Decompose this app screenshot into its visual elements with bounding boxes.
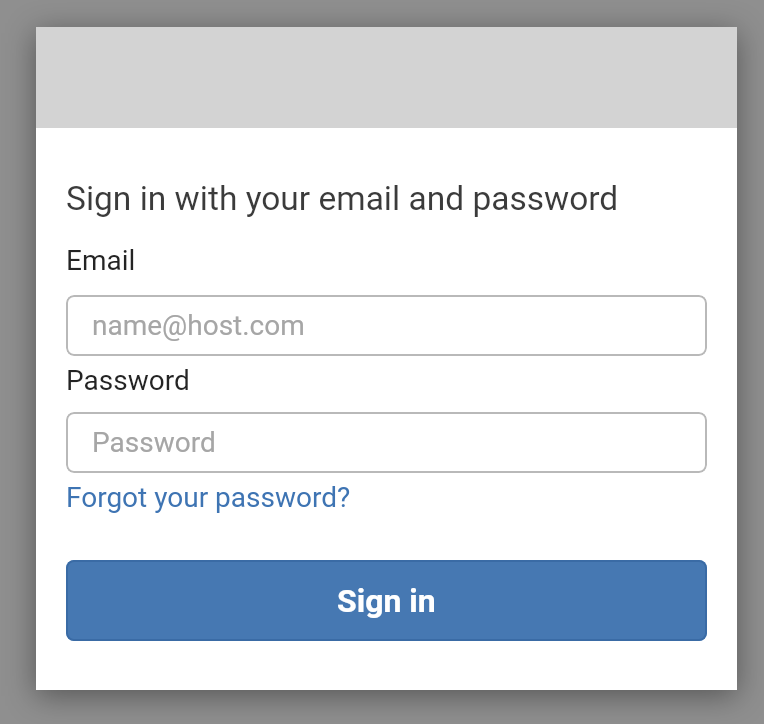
button[interactable]: Password	[66, 412, 707, 473]
staticText: Password	[66, 364, 190, 397]
button[interactable]: Forgot your password?	[66, 481, 351, 514]
button[interactable]: Sign in	[66, 560, 707, 641]
staticText: Sign in	[337, 582, 436, 620]
staticText: name@host.com	[92, 309, 305, 342]
staticText: Sign in with your email and password	[66, 179, 619, 218]
staticText: Password	[92, 426, 216, 459]
button[interactable]: name@host.com	[66, 295, 707, 356]
staticText: Email	[66, 244, 136, 277]
